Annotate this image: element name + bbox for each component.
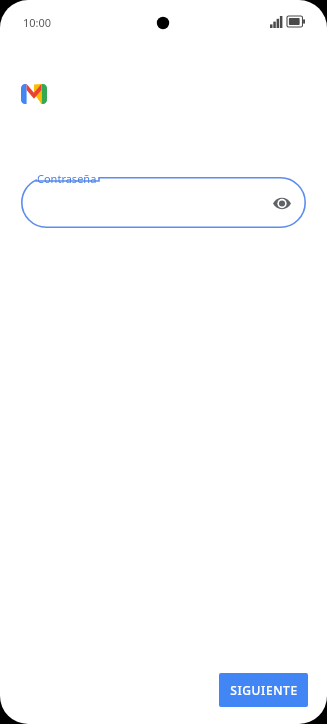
staticText: Contraseña — [37, 171, 97, 186]
button[interactable]: Mostrar contraseña — [21, 177, 306, 228]
staticText: 10:00 — [23, 15, 52, 30]
button[interactable]: Mostrar contraseña — [268, 189, 296, 217]
staticText: SIGUIENTE — [230, 682, 298, 698]
button[interactable]: SIGUIENTE — [219, 673, 308, 707]
